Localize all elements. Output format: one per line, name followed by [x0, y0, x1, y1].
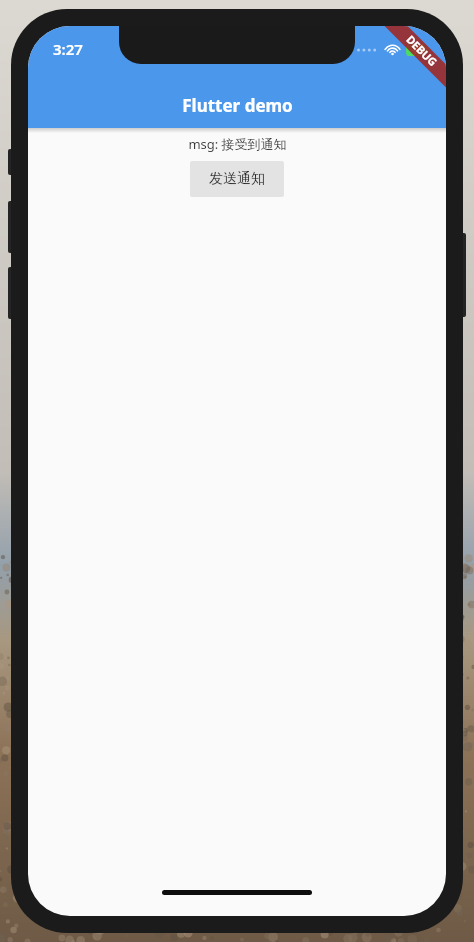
staticText: DEBUG: [403, 32, 441, 69]
staticText: Flutter demo: [182, 94, 293, 117]
staticText: 3:27: [53, 39, 83, 59]
other: Debug banner: [350, 26, 446, 122]
staticText: msg: 接受到通知: [188, 135, 287, 153]
staticText: 发送通知: [209, 170, 265, 188]
button[interactable]: 发送通知: [190, 161, 284, 197]
